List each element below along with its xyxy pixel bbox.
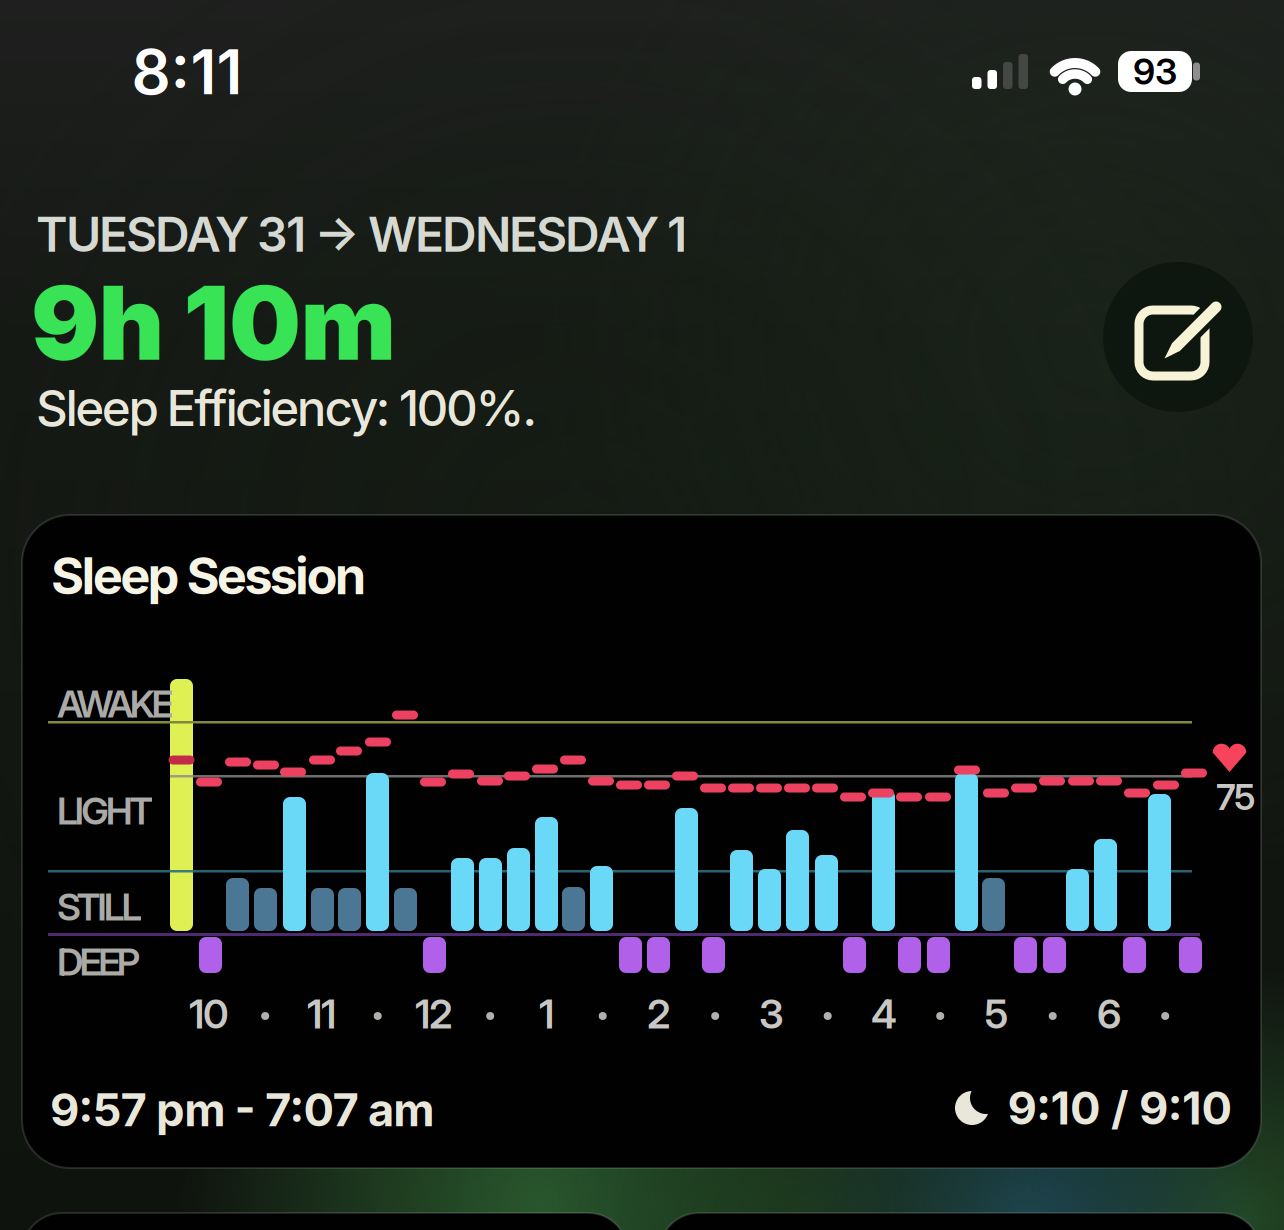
staticText: 9:57 pm - 7:07 am (50, 1083, 434, 1136)
staticText: 9h 10m (31, 263, 396, 382)
staticText: 11 (307, 990, 336, 1038)
staticText: 1 (539, 990, 554, 1038)
staticText: STILL (57, 885, 142, 929)
staticText: 2 (647, 990, 671, 1038)
staticText: 9:10 / 9:10 (1007, 1081, 1232, 1135)
staticText: 3 (759, 990, 784, 1038)
staticText: Sleep Efficiency: 100%. (36, 379, 537, 437)
staticText: 8:11 (131, 36, 242, 108)
staticText: Sleep Session (51, 546, 367, 606)
staticText: 4 (871, 990, 897, 1038)
staticText: LIGHT (57, 789, 153, 833)
button[interactable]: Details (22, 1213, 628, 1230)
staticText: DEEP (57, 940, 140, 984)
button[interactable]: Edit (1103, 262, 1253, 412)
staticText: 5 (984, 990, 1008, 1038)
staticText: 10 (189, 990, 229, 1038)
staticText: 6 (1097, 990, 1121, 1038)
staticText: AWAKE (57, 682, 173, 726)
staticText: 93 (1133, 50, 1177, 93)
staticText: 12 (415, 990, 453, 1038)
staticText: TUESDAY 31 → WEDNESDAY 1 (36, 206, 687, 263)
staticText: 75 (1216, 776, 1256, 818)
button[interactable]: Details (659, 1213, 1261, 1230)
